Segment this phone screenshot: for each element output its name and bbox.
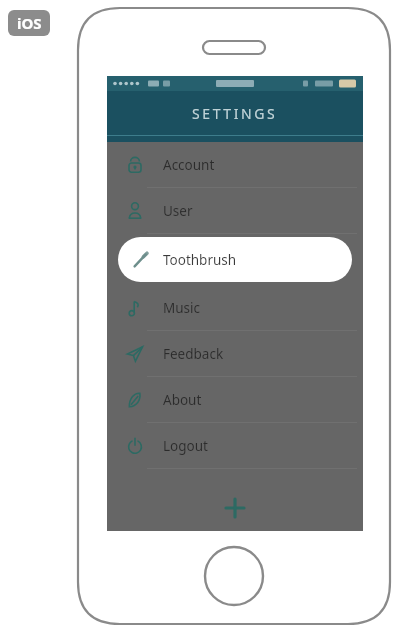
button[interactable]: Toothbrush [118, 237, 352, 282]
staticText: Toothbrush [163, 251, 237, 269]
button[interactable]: Logout [107, 423, 363, 468]
staticText: iOS [17, 13, 42, 33]
staticText: Music [163, 299, 201, 317]
staticText: About [163, 391, 202, 409]
button[interactable]: Feedback [107, 331, 363, 376]
staticText: Feedback [163, 345, 224, 363]
button[interactable]: Add [218, 491, 252, 525]
button[interactable]: User [107, 188, 363, 233]
button[interactable]: About [107, 377, 363, 422]
staticText: Account [163, 156, 215, 174]
staticText: Logout [163, 437, 208, 455]
button[interactable]: Music [107, 285, 363, 330]
button[interactable]: Account [107, 142, 363, 187]
staticText: User [163, 202, 193, 220]
staticText: SETTINGS [192, 104, 278, 123]
